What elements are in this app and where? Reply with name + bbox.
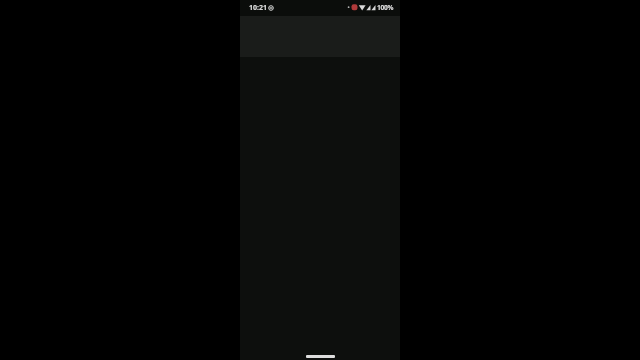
other: Do not disturb bbox=[268, 5, 274, 11]
staticText: 100% bbox=[377, 3, 394, 12]
other: Recording, Wi-Fi and mobile signal bbox=[347, 3, 383, 12]
staticText: 10:21 bbox=[249, 3, 267, 12]
